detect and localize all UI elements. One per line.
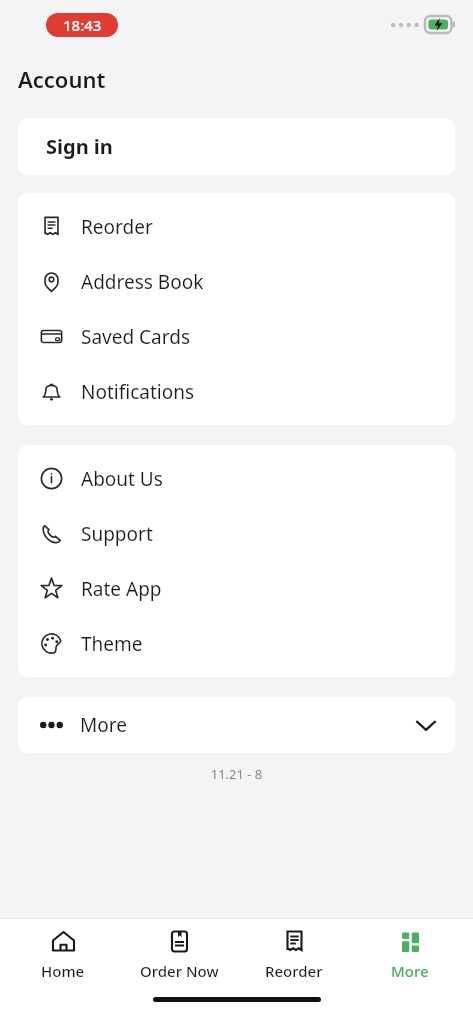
staticText: Notifications bbox=[81, 379, 195, 405]
staticText: 18:43 bbox=[63, 15, 102, 35]
button[interactable]: Sign in bbox=[18, 118, 455, 175]
staticText: About Us bbox=[81, 466, 163, 492]
button[interactable]: Support bbox=[18, 506, 455, 561]
button[interactable]: Reorder bbox=[241, 925, 347, 985]
button[interactable]: Rate App bbox=[18, 561, 455, 616]
button[interactable]: Reorder bbox=[18, 199, 455, 254]
button[interactable]: More bbox=[18, 697, 455, 753]
staticText: Reorder bbox=[81, 214, 153, 240]
staticText: Account bbox=[18, 64, 106, 94]
button[interactable]: More bbox=[357, 925, 463, 985]
staticText: Order Now bbox=[140, 961, 219, 981]
button[interactable]: Home bbox=[10, 925, 116, 985]
staticText: Rate App bbox=[81, 576, 162, 602]
button[interactable]: About Us bbox=[18, 451, 455, 506]
staticText: Reorder bbox=[265, 961, 323, 981]
staticText: 11.21 - 8 bbox=[0, 765, 473, 783]
staticText: Saved Cards bbox=[81, 324, 191, 350]
staticText: Address Book bbox=[81, 269, 204, 295]
staticText: Support bbox=[81, 521, 153, 547]
staticText: More bbox=[80, 712, 127, 738]
button[interactable]: Order Now bbox=[126, 925, 232, 985]
staticText: Sign in bbox=[46, 133, 113, 160]
button[interactable]: Address Book bbox=[18, 254, 455, 309]
staticText: Home bbox=[41, 961, 85, 981]
button[interactable]: Saved Cards bbox=[18, 309, 455, 364]
staticText: Theme bbox=[81, 631, 143, 657]
button[interactable]: Theme bbox=[18, 616, 455, 671]
staticText: More bbox=[391, 961, 429, 981]
button[interactable]: Notifications bbox=[18, 364, 455, 419]
